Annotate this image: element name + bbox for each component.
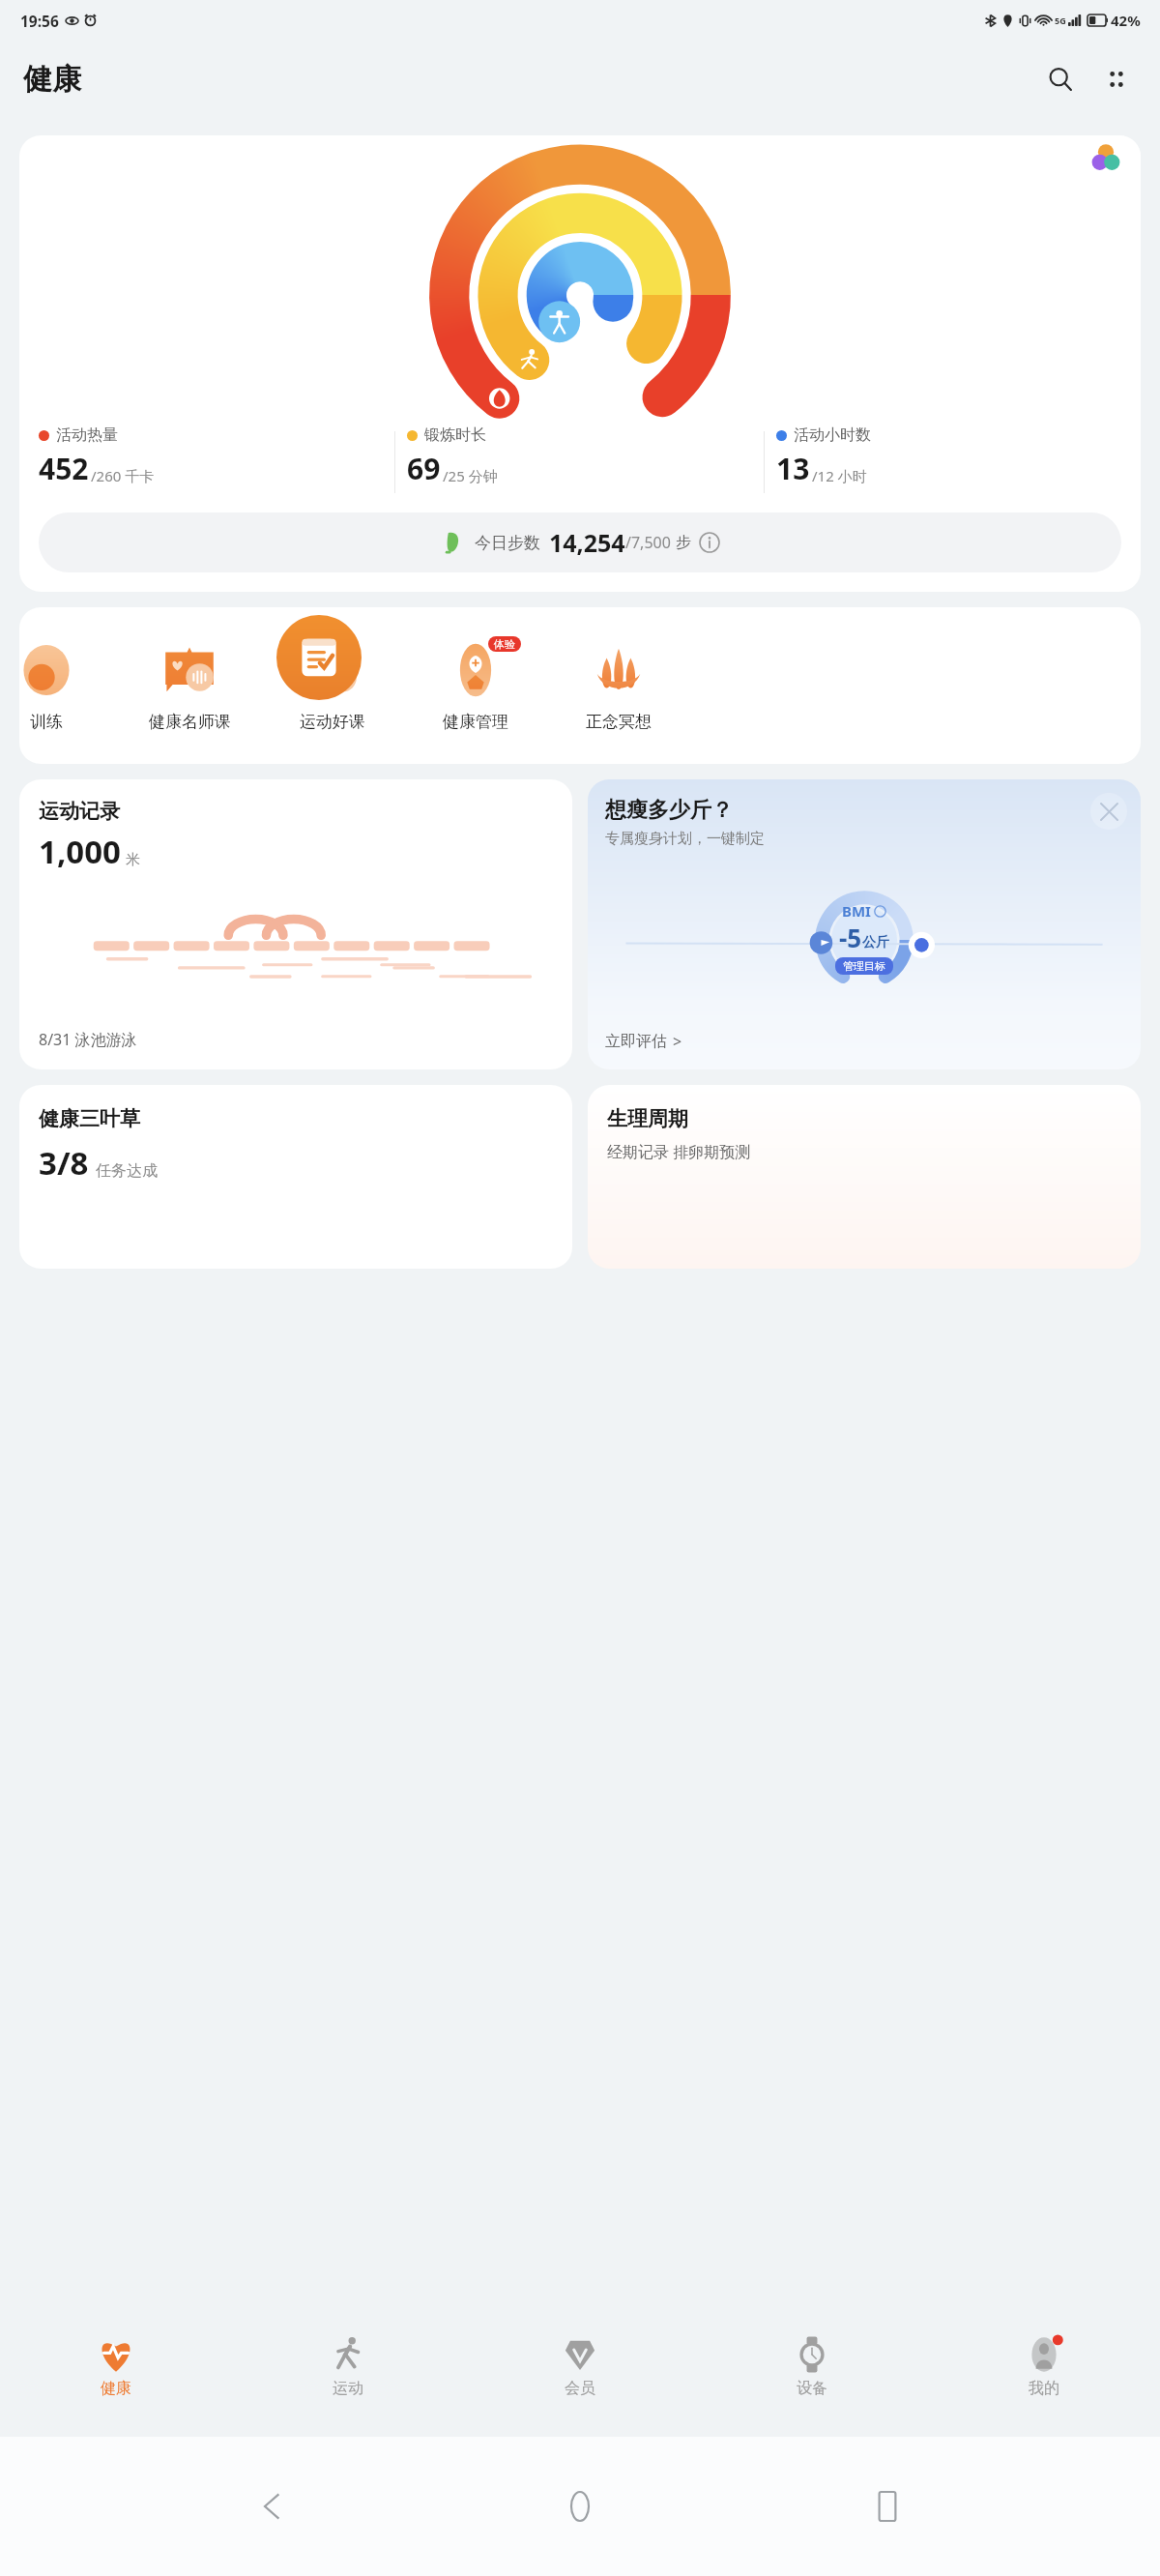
staticText: 健康三叶草 <box>39 1106 140 1131</box>
button[interactable]: 我的 <box>928 2296 1160 2437</box>
button[interactable]: Add record <box>276 615 362 700</box>
staticText: /7,500 <box>625 532 671 553</box>
staticText: 想瘦多少斤？ <box>605 797 733 824</box>
button[interactable]: 训练 <box>19 607 118 764</box>
staticText: 经期记录 排卵期预测 <box>607 1141 751 1162</box>
staticText: BMI <box>842 901 871 921</box>
staticText: > <box>673 1031 682 1052</box>
staticText: 步 <box>676 533 691 552</box>
button[interactable]: 健康 <box>0 2296 232 2437</box>
staticText: 锻炼时长 <box>424 425 486 445</box>
button[interactable]: More options <box>1094 57 1139 102</box>
button[interactable]: Home <box>546 2473 614 2540</box>
button[interactable]: 活动热量 <box>19 135 1141 592</box>
staticText: 活动小时数 <box>794 425 871 445</box>
staticText: 管理目标 <box>843 959 885 973</box>
button[interactable]: Back <box>240 2473 307 2540</box>
staticText: 8/31 泳池游泳 <box>39 1029 137 1050</box>
staticText: /260 千卡 <box>91 466 155 485</box>
button[interactable]: 活动小时数 <box>765 425 1133 488</box>
button[interactable]: 今日步数 <box>39 512 1121 572</box>
staticText: 健康名师课 <box>149 712 231 732</box>
button[interactable]: 健康三叶草 <box>19 1085 572 1269</box>
staticText: 我的 <box>1029 2379 1059 2398</box>
staticText: 13 <box>776 449 810 488</box>
button[interactable]: 运动 <box>232 2296 464 2437</box>
staticText: 健康 <box>23 61 81 98</box>
staticText: 42% <box>1111 11 1141 30</box>
staticText: 1,000 <box>39 830 121 873</box>
button[interactable]: 体验 <box>404 607 547 764</box>
staticText: 米 <box>126 851 140 869</box>
button[interactable]: Close <box>1090 793 1127 830</box>
staticText: 公斤 <box>862 934 889 951</box>
button[interactable]: Recent apps <box>854 2473 921 2540</box>
staticText: 452 <box>39 449 89 488</box>
staticText: 5G <box>1055 15 1066 26</box>
button[interactable]: 活动热量 <box>27 425 394 488</box>
staticText: 专属瘦身计划，一键制定 <box>605 830 765 848</box>
button[interactable]: 想瘦多少斤？ <box>588 779 1141 1069</box>
staticText: 运动记录 <box>39 799 120 824</box>
staticText: 19:56 <box>20 11 59 31</box>
staticText: 任务达成 <box>96 1161 158 1181</box>
staticText: 运动好课 <box>300 712 365 732</box>
button[interactable]: 会员 <box>464 2296 696 2437</box>
button[interactable]: 生理周期 <box>588 1085 1141 1269</box>
staticText: 今日步数 <box>475 533 540 553</box>
staticText: 3/8 <box>39 1141 89 1185</box>
staticText: 运动 <box>333 2379 363 2398</box>
staticText: 14,254 <box>549 526 625 559</box>
staticText: 设备 <box>797 2379 827 2398</box>
staticText: /25 分钟 <box>443 466 498 485</box>
staticText: 会员 <box>565 2379 595 2398</box>
staticText: 健康管理 <box>443 712 508 732</box>
staticText: 正念冥想 <box>586 712 652 732</box>
button[interactable]: 设备 <box>696 2296 928 2437</box>
button[interactable]: 健康名师课 <box>118 607 261 764</box>
button[interactable]: 锻炼时长 <box>395 425 764 488</box>
button[interactable] <box>1071 135 1141 180</box>
staticText: 69 <box>407 449 441 488</box>
button[interactable]: 运动好课 <box>261 607 404 764</box>
staticText: 训练 <box>30 712 63 732</box>
button[interactable]: 正念冥想 <box>547 607 690 764</box>
staticText: -5 <box>839 921 862 954</box>
button[interactable]: 运动记录 <box>19 779 572 1069</box>
button[interactable]: Search <box>1038 57 1083 102</box>
staticText: 活动热量 <box>56 425 118 445</box>
staticText: /12 小时 <box>812 466 867 485</box>
staticText: 生理周期 <box>607 1106 688 1131</box>
staticText: 体验 <box>494 637 515 651</box>
staticText: 立即评估 <box>605 1032 667 1051</box>
staticText: 健康 <box>101 2379 131 2398</box>
